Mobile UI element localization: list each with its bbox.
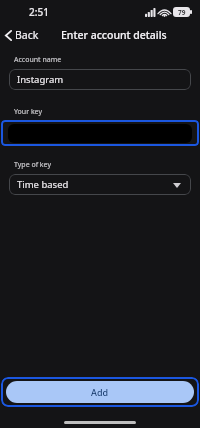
staticText: Back (15, 28, 39, 42)
button[interactable]: Instagram (9, 69, 191, 90)
staticText: Account name (14, 55, 62, 65)
button[interactable]: Your key (1, 120, 199, 146)
staticText: Enter account details (61, 28, 167, 42)
other: Expand key type (172, 180, 182, 190)
staticText: 79 (178, 8, 186, 17)
staticText: Type of key (14, 160, 51, 170)
button[interactable]: Back (0, 26, 45, 44)
staticText: Instagram (17, 73, 64, 86)
button[interactable]: Add (1, 377, 199, 407)
staticText: Time based (17, 178, 69, 191)
staticText: 2:51 (29, 5, 49, 19)
staticText: Your key (14, 107, 42, 117)
staticText: Add (91, 386, 109, 398)
button[interactable]: Time based (9, 174, 191, 195)
